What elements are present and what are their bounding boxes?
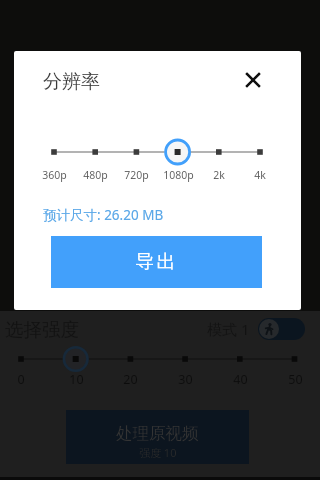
button[interactable]: Close bbox=[238, 65, 267, 94]
staticText: 导出 bbox=[134, 250, 177, 274]
staticText: 360p bbox=[42, 168, 67, 182]
staticText: 50 bbox=[288, 371, 303, 388]
staticText: 20 bbox=[123, 371, 138, 388]
staticText: 模式 1 bbox=[207, 319, 250, 339]
staticText: 选择强度 bbox=[5, 318, 79, 341]
staticText: 10 bbox=[69, 371, 84, 388]
staticText: 处理原视频 bbox=[116, 423, 199, 444]
staticText: 强度 10 bbox=[139, 445, 177, 460]
button[interactable]: 导出 bbox=[51, 236, 262, 288]
staticText: 0 bbox=[17, 371, 25, 388]
staticText: 720p bbox=[124, 168, 149, 182]
staticText: 1080p bbox=[163, 168, 194, 182]
staticText: 分辨率 bbox=[43, 70, 100, 94]
staticText: 40 bbox=[233, 371, 248, 388]
staticText: 2k bbox=[213, 168, 225, 182]
button[interactable]: 处理原视频 bbox=[66, 410, 249, 464]
button[interactable]: Mode toggle bbox=[258, 318, 305, 340]
staticText: 480p bbox=[83, 168, 108, 182]
staticText: 30 bbox=[178, 371, 193, 388]
staticText: 预计尺寸: 26.20 MB bbox=[43, 206, 164, 224]
staticText: 4k bbox=[254, 168, 266, 182]
